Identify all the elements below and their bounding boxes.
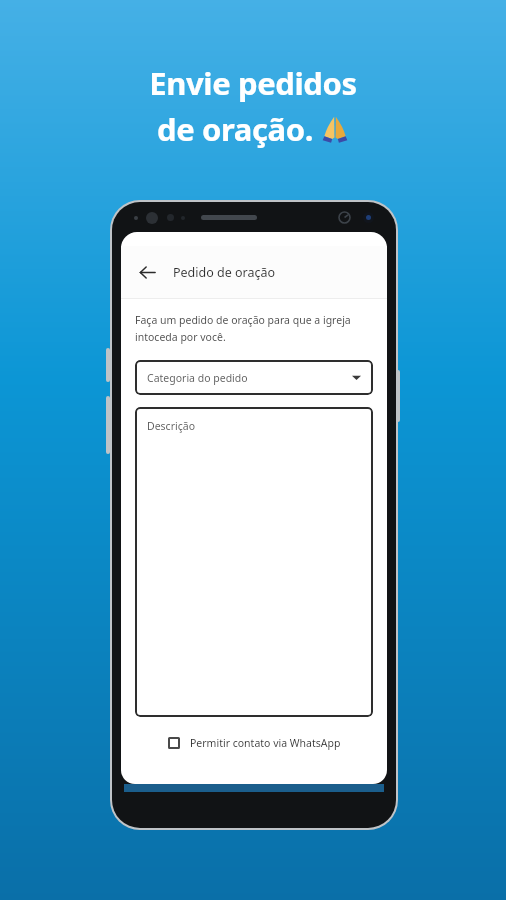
staticText: Envie pedidos	[149, 62, 357, 104]
staticText: Permitir contato via WhatsApp	[190, 736, 341, 750]
staticText: Pedido de oração	[173, 264, 276, 281]
button[interactable]: Categoria do pedido	[135, 360, 373, 395]
staticText: de oração.	[157, 108, 313, 150]
button[interactable]: Descrição	[135, 407, 373, 717]
button[interactable]: Permitir contato via WhatsApp	[121, 733, 387, 753]
staticText: Categoria do pedido	[147, 371, 248, 385]
button[interactable]: Voltar	[129, 254, 165, 290]
staticText: Descrição	[147, 419, 195, 433]
staticText: Faça um pedido de oração para que a igre…	[135, 313, 351, 344]
